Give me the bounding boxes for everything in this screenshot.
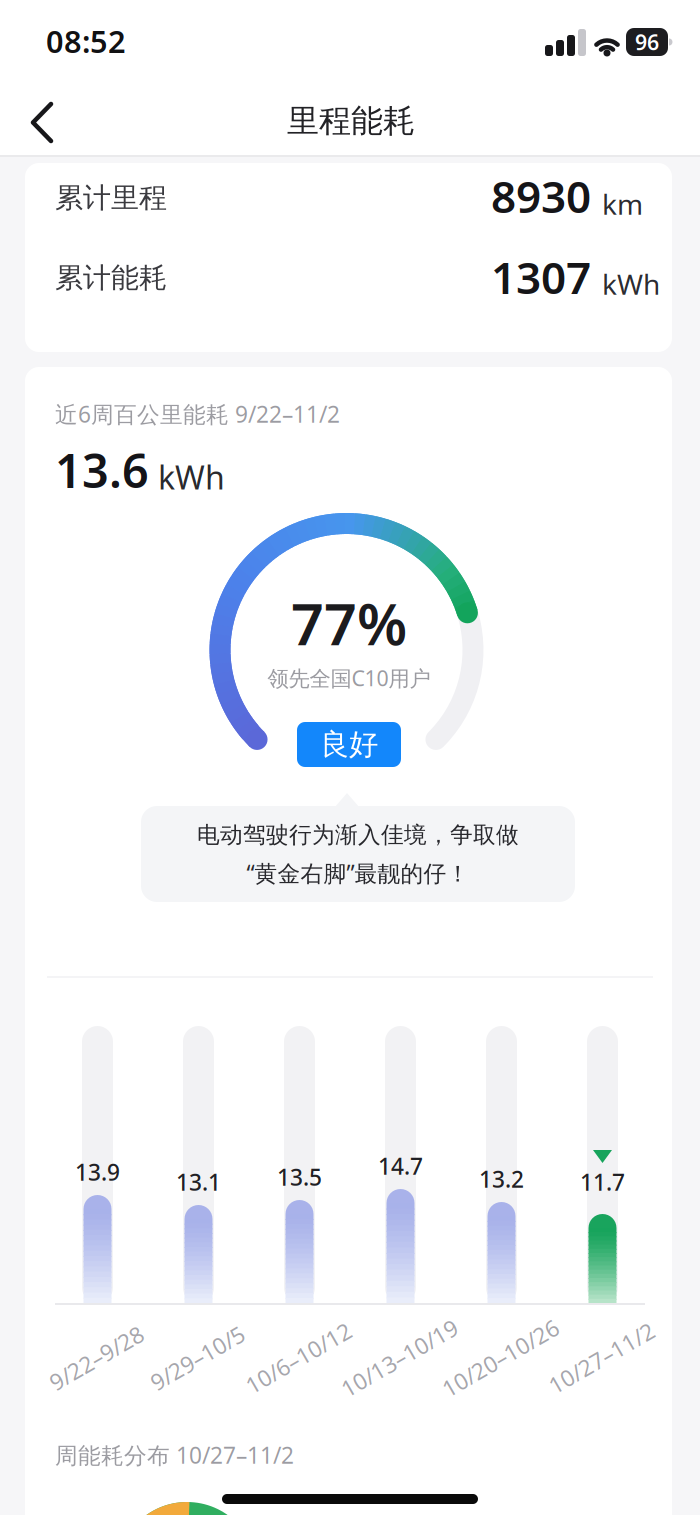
staticText: 14.7 — [378, 1151, 423, 1181]
staticText: 13.1 — [176, 1167, 221, 1197]
staticText: 08:52 — [46, 21, 126, 61]
button[interactable]: Back — [10, 90, 74, 154]
staticText: 11.7 — [580, 1167, 625, 1197]
staticText: “黄金右脚”最靓的仔！ — [246, 858, 469, 888]
staticText: 13.5 — [277, 1162, 322, 1192]
staticText: 96 — [635, 28, 659, 56]
staticText: 里程能耗 — [287, 101, 415, 141]
staticText: 77% — [291, 585, 407, 661]
button[interactable]: 良好 — [297, 722, 401, 767]
staticText: 电动驾驶行为渐入佳境，争取做 — [197, 821, 519, 849]
staticText: 累计里程 — [55, 181, 167, 215]
staticText: kWh — [158, 456, 225, 498]
staticText: 10/13–10/19 — [334, 1343, 465, 1373]
staticText: 13.6 — [55, 439, 149, 501]
staticText: 周能耗分布 10/27–11/2 — [55, 1440, 294, 1470]
staticText: 近6周百公里能耗 9/22–11/2 — [55, 399, 340, 429]
staticText: 9/29–10/5 — [145, 1343, 250, 1373]
staticText: 13.9 — [75, 1157, 120, 1187]
staticText: km — [602, 185, 643, 223]
staticText: 领先全国C10用户 — [267, 664, 430, 692]
staticText: 9/22–9/28 — [44, 1343, 149, 1373]
staticText: 累计能耗 — [55, 261, 167, 295]
staticText: 10/6–10/12 — [239, 1343, 357, 1373]
staticText: kWh — [602, 265, 660, 303]
staticText: 10/27–11/2 — [542, 1343, 660, 1373]
staticText: 10/20–10/26 — [435, 1343, 566, 1373]
staticText: 13.2 — [479, 1164, 524, 1194]
staticText: 良好 — [320, 726, 378, 762]
staticText: 1307 — [491, 248, 591, 306]
staticText: 8930 — [491, 167, 591, 225]
